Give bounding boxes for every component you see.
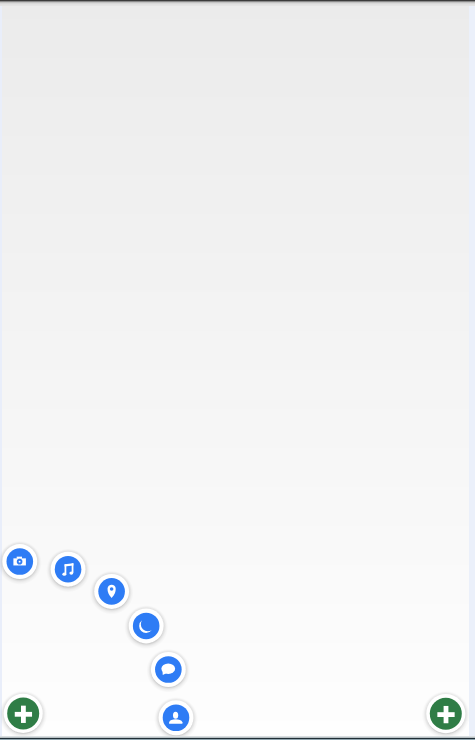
button[interactable]: Create new [422, 690, 469, 737]
button[interactable]: Music [48, 549, 89, 590]
button[interactable]: Location [91, 571, 132, 612]
button[interactable]: Messages [148, 649, 189, 690]
button[interactable]: Night mode [126, 605, 167, 646]
button[interactable]: Camera [0, 541, 40, 582]
button[interactable]: Add [0, 690, 47, 737]
button[interactable]: Profile [156, 697, 197, 738]
